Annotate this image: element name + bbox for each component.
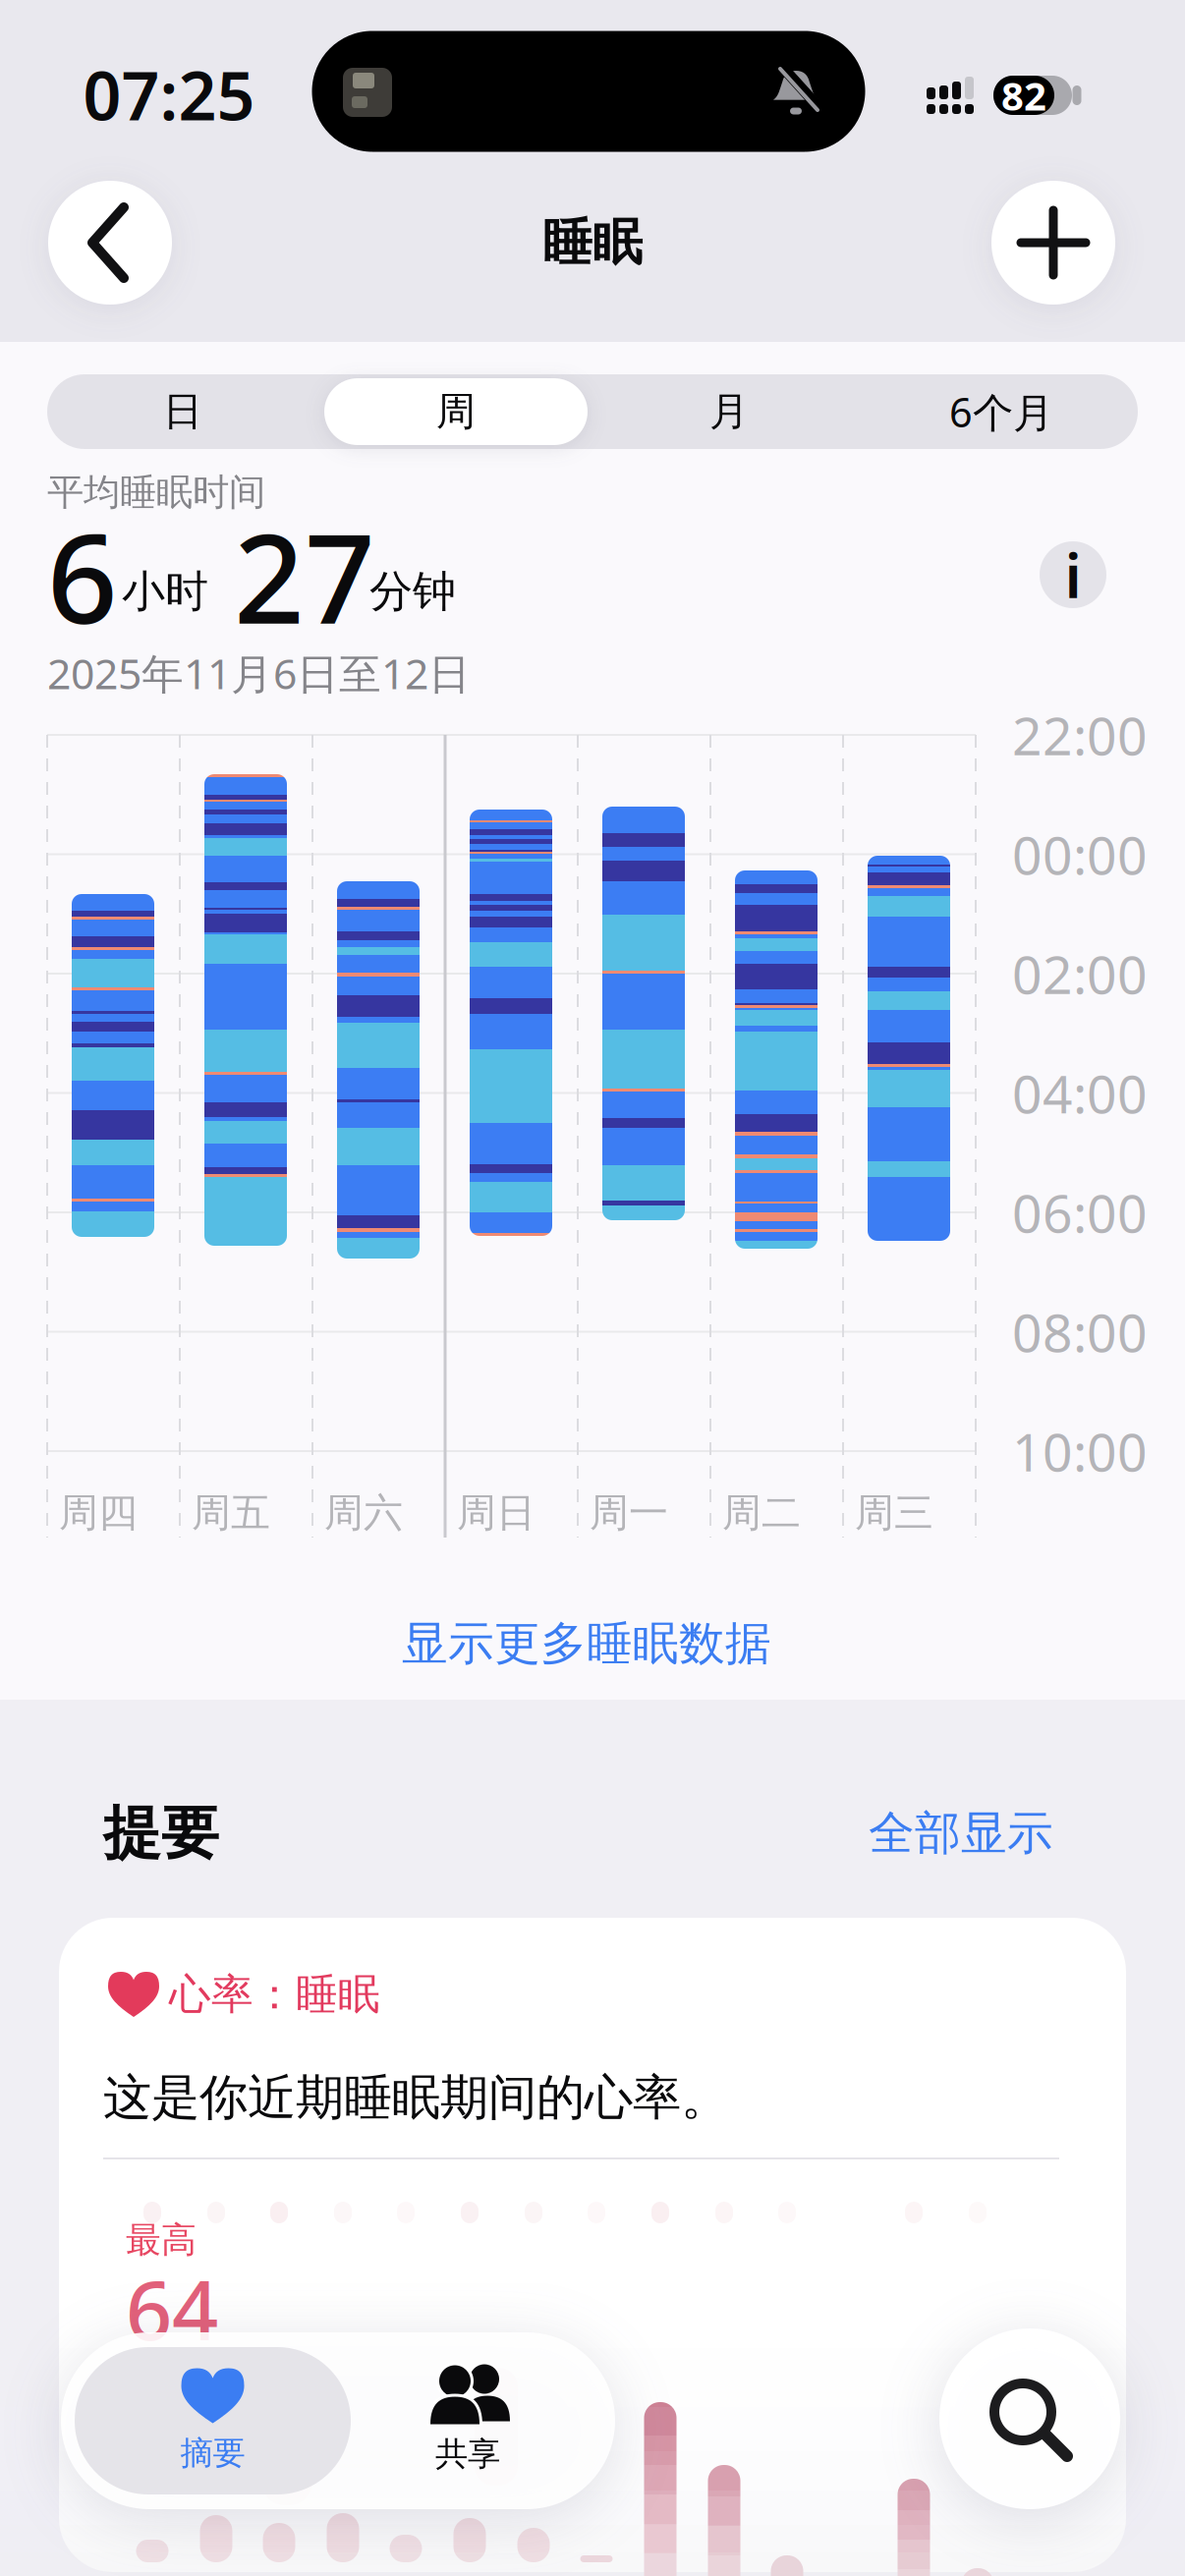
staticText: 22:00 (1012, 700, 1148, 770)
button[interactable]: 心率：睡眠 (59, 1918, 1126, 2572)
button[interactable]: 月 (596, 374, 862, 449)
button[interactable]: 添加 (991, 181, 1115, 305)
staticText: 周 (436, 387, 476, 436)
staticText: 周四 (59, 1489, 138, 1537)
button[interactable]: 摘要 (75, 2347, 351, 2494)
staticText: 6个月 (949, 385, 1053, 439)
staticText: 睡眠 (542, 212, 643, 273)
staticText: 小时 (122, 565, 208, 618)
button[interactable]: 信息 (1040, 535, 1106, 615)
staticText: 27 (234, 494, 375, 657)
staticText: 周二 (722, 1489, 801, 1537)
button[interactable]: 全部显示 (843, 1799, 1079, 1868)
staticText: 周一 (590, 1489, 668, 1537)
staticText: 07:25 (83, 50, 255, 139)
staticText: 周五 (192, 1489, 270, 1537)
staticText: 周日 (457, 1489, 536, 1537)
staticText: 10:00 (1012, 1416, 1148, 1486)
staticText: 显示更多睡眠数据 (402, 1615, 771, 1672)
button[interactable]: 搜索 (939, 2328, 1120, 2509)
staticText: 6 (47, 494, 118, 657)
staticText: 08:00 (1012, 1297, 1148, 1366)
button[interactable]: 共享 (350, 2342, 586, 2499)
staticText: 心率：睡眠 (169, 1969, 380, 2020)
button[interactable]: 6个月 (866, 374, 1137, 449)
button[interactable]: 返回 (48, 181, 172, 305)
staticText: 00:00 (1012, 819, 1148, 889)
staticText: 月 (709, 387, 749, 436)
staticText: 提要 (103, 1798, 219, 1869)
staticText: 这是你近期睡眠期间的心率。 (103, 2068, 729, 2127)
staticText: 日 (163, 387, 202, 436)
staticText: 02:00 (1012, 939, 1148, 1008)
staticText: 周三 (855, 1489, 933, 1537)
button[interactable]: 日 (50, 374, 315, 449)
staticText: 06:00 (1012, 1178, 1148, 1247)
staticText: i (1065, 535, 1081, 615)
staticText: 最高 (126, 2218, 197, 2262)
staticText: 共享 (435, 2434, 500, 2474)
button[interactable]: 显示更多睡眠数据 (243, 1604, 931, 1683)
staticText: 平均睡眠时间 (47, 470, 265, 515)
staticText: 全部显示 (869, 1805, 1053, 1861)
staticText: 64 (126, 2255, 218, 2363)
staticText: 摘要 (180, 2433, 245, 2473)
button[interactable]: 周 (324, 378, 588, 445)
staticText: 周六 (324, 1489, 403, 1537)
staticText: 2025年11月6日至12日 (47, 645, 471, 701)
staticText: 分钟 (369, 565, 456, 618)
staticText: 04:00 (1012, 1058, 1148, 1128)
staticText: 82 (1001, 69, 1046, 121)
